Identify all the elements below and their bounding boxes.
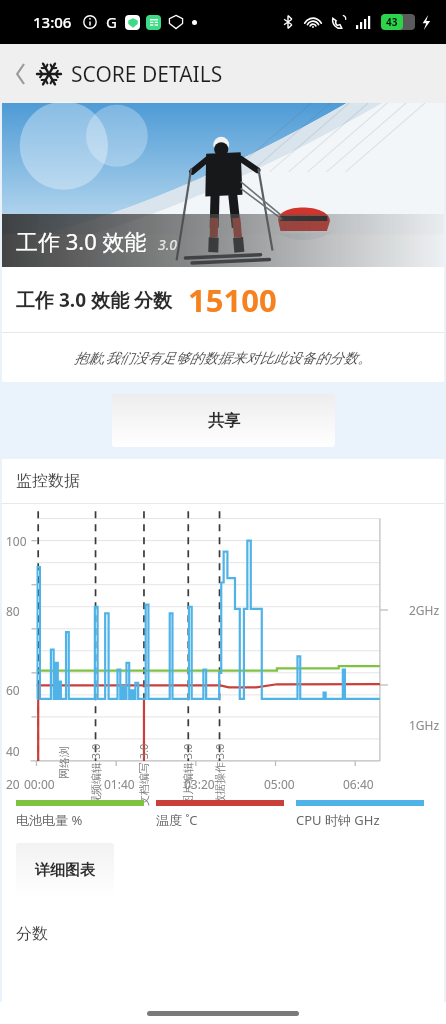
staticText: 详细图表 (35, 861, 95, 880)
staticText: 03:20 (184, 776, 215, 792)
button[interactable]: 详细图表 (16, 843, 114, 898)
staticText: 06:40 (343, 776, 374, 792)
staticText: 15100 (188, 279, 277, 321)
staticText: 20 (6, 776, 20, 792)
staticText: 视频编辑 3.0 (88, 743, 102, 806)
staticText: 05:00 (264, 776, 295, 792)
staticText: 图片编辑 3.0 (180, 743, 194, 806)
staticText: 工作 3.0 效能 (16, 226, 147, 256)
button[interactable]: Back (6, 59, 36, 89)
staticText: 3.0 (158, 235, 178, 254)
staticText: 60 (6, 682, 20, 698)
staticText: 80 (6, 603, 20, 619)
staticText: 01:40 (104, 776, 135, 792)
staticText: 分数 (16, 924, 48, 944)
staticText: CPU 时钟 GHz (296, 811, 380, 829)
staticText: 共享 (208, 411, 240, 431)
staticText: 00:00 (24, 776, 55, 792)
staticText: 13:06 (33, 12, 72, 32)
staticText: 43 (386, 15, 398, 29)
staticText: 文档编写 3.0 (136, 743, 150, 806)
staticText: 100 (6, 533, 27, 549)
staticText: G (106, 12, 117, 32)
staticText: 40 (6, 743, 20, 759)
staticText: 工作 3.0 效能 分数 (16, 287, 172, 313)
staticText: 1GHz (409, 717, 440, 733)
staticText: 监控数据 (16, 471, 80, 491)
staticText: 2GHz (409, 602, 440, 618)
button[interactable]: 共享 (112, 394, 335, 447)
staticText: 温度 ˚C (156, 811, 198, 829)
staticText: 抱歉,我们没有足够的数据来对比此设备的分数。 (74, 348, 372, 367)
staticText: SCORE DETAILS (71, 60, 223, 89)
staticText: 数据操作 3.0 (212, 743, 226, 806)
staticText: 网络浏览 3.0 (57, 743, 71, 779)
staticText: 电池电量 % (16, 811, 83, 829)
